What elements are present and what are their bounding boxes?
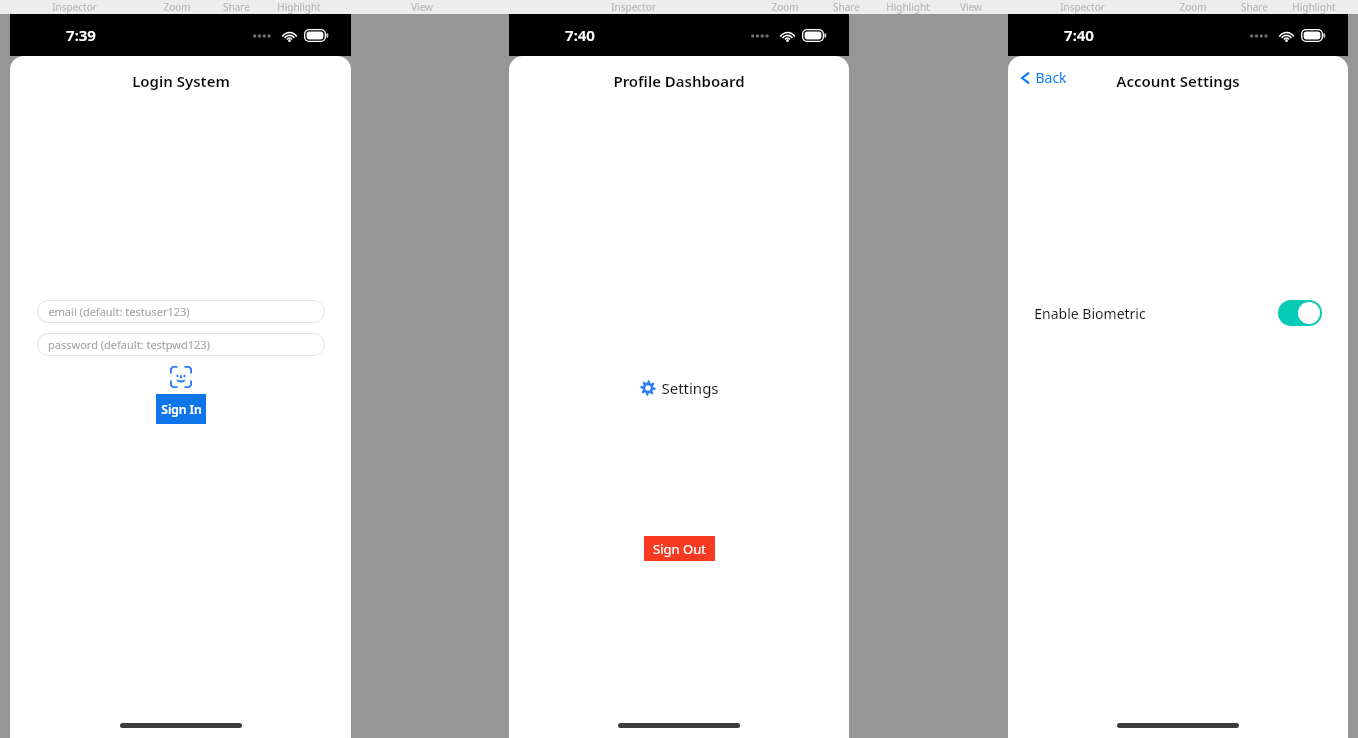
staticText: Highlight bbox=[277, 0, 321, 14]
button[interactable]: password (default: testpwd123) bbox=[37, 333, 325, 356]
button[interactable]: Sign In bbox=[156, 394, 206, 424]
staticText: Zoom bbox=[771, 0, 799, 14]
staticText: Share bbox=[833, 0, 860, 14]
staticText: Zoom bbox=[1179, 0, 1207, 14]
staticText: Share bbox=[223, 0, 250, 14]
staticText: password (default: testpwd123) bbox=[48, 337, 210, 352]
button[interactable]: email (default: testuser123) bbox=[37, 300, 325, 323]
staticText: Profile Dashboard bbox=[613, 71, 745, 91]
staticText: Back bbox=[1035, 68, 1067, 87]
button[interactable]: Sign Out bbox=[644, 536, 715, 561]
staticText: Sign Out bbox=[653, 540, 706, 558]
staticText: Account Settings bbox=[1116, 71, 1240, 91]
staticText: Inspector bbox=[1060, 0, 1105, 14]
staticText: Settings bbox=[661, 378, 719, 398]
staticText: Zoom bbox=[163, 0, 191, 14]
staticText: 7:40 bbox=[1064, 25, 1094, 45]
staticText: View bbox=[411, 0, 433, 14]
button[interactable]: Back bbox=[1020, 68, 1067, 87]
staticText: Sign In bbox=[161, 401, 202, 417]
staticText: Inspector bbox=[52, 0, 97, 14]
staticText: View bbox=[960, 0, 982, 14]
staticText: Share bbox=[1241, 0, 1268, 14]
button[interactable]: Face ID bbox=[170, 366, 192, 388]
button[interactable]: Settings bbox=[640, 378, 719, 398]
staticText: Highlight bbox=[1292, 0, 1336, 14]
staticText: 7:40 bbox=[565, 25, 595, 45]
button[interactable]: Enable Biometric toggle bbox=[1278, 300, 1322, 326]
staticText: email (default: testuser123) bbox=[48, 304, 190, 319]
staticText: Enable Biometric bbox=[1034, 304, 1146, 323]
staticText: Inspector bbox=[611, 0, 656, 14]
staticText: Login System bbox=[132, 71, 230, 91]
staticText: Highlight bbox=[886, 0, 930, 14]
staticText: 7:39 bbox=[66, 25, 96, 45]
